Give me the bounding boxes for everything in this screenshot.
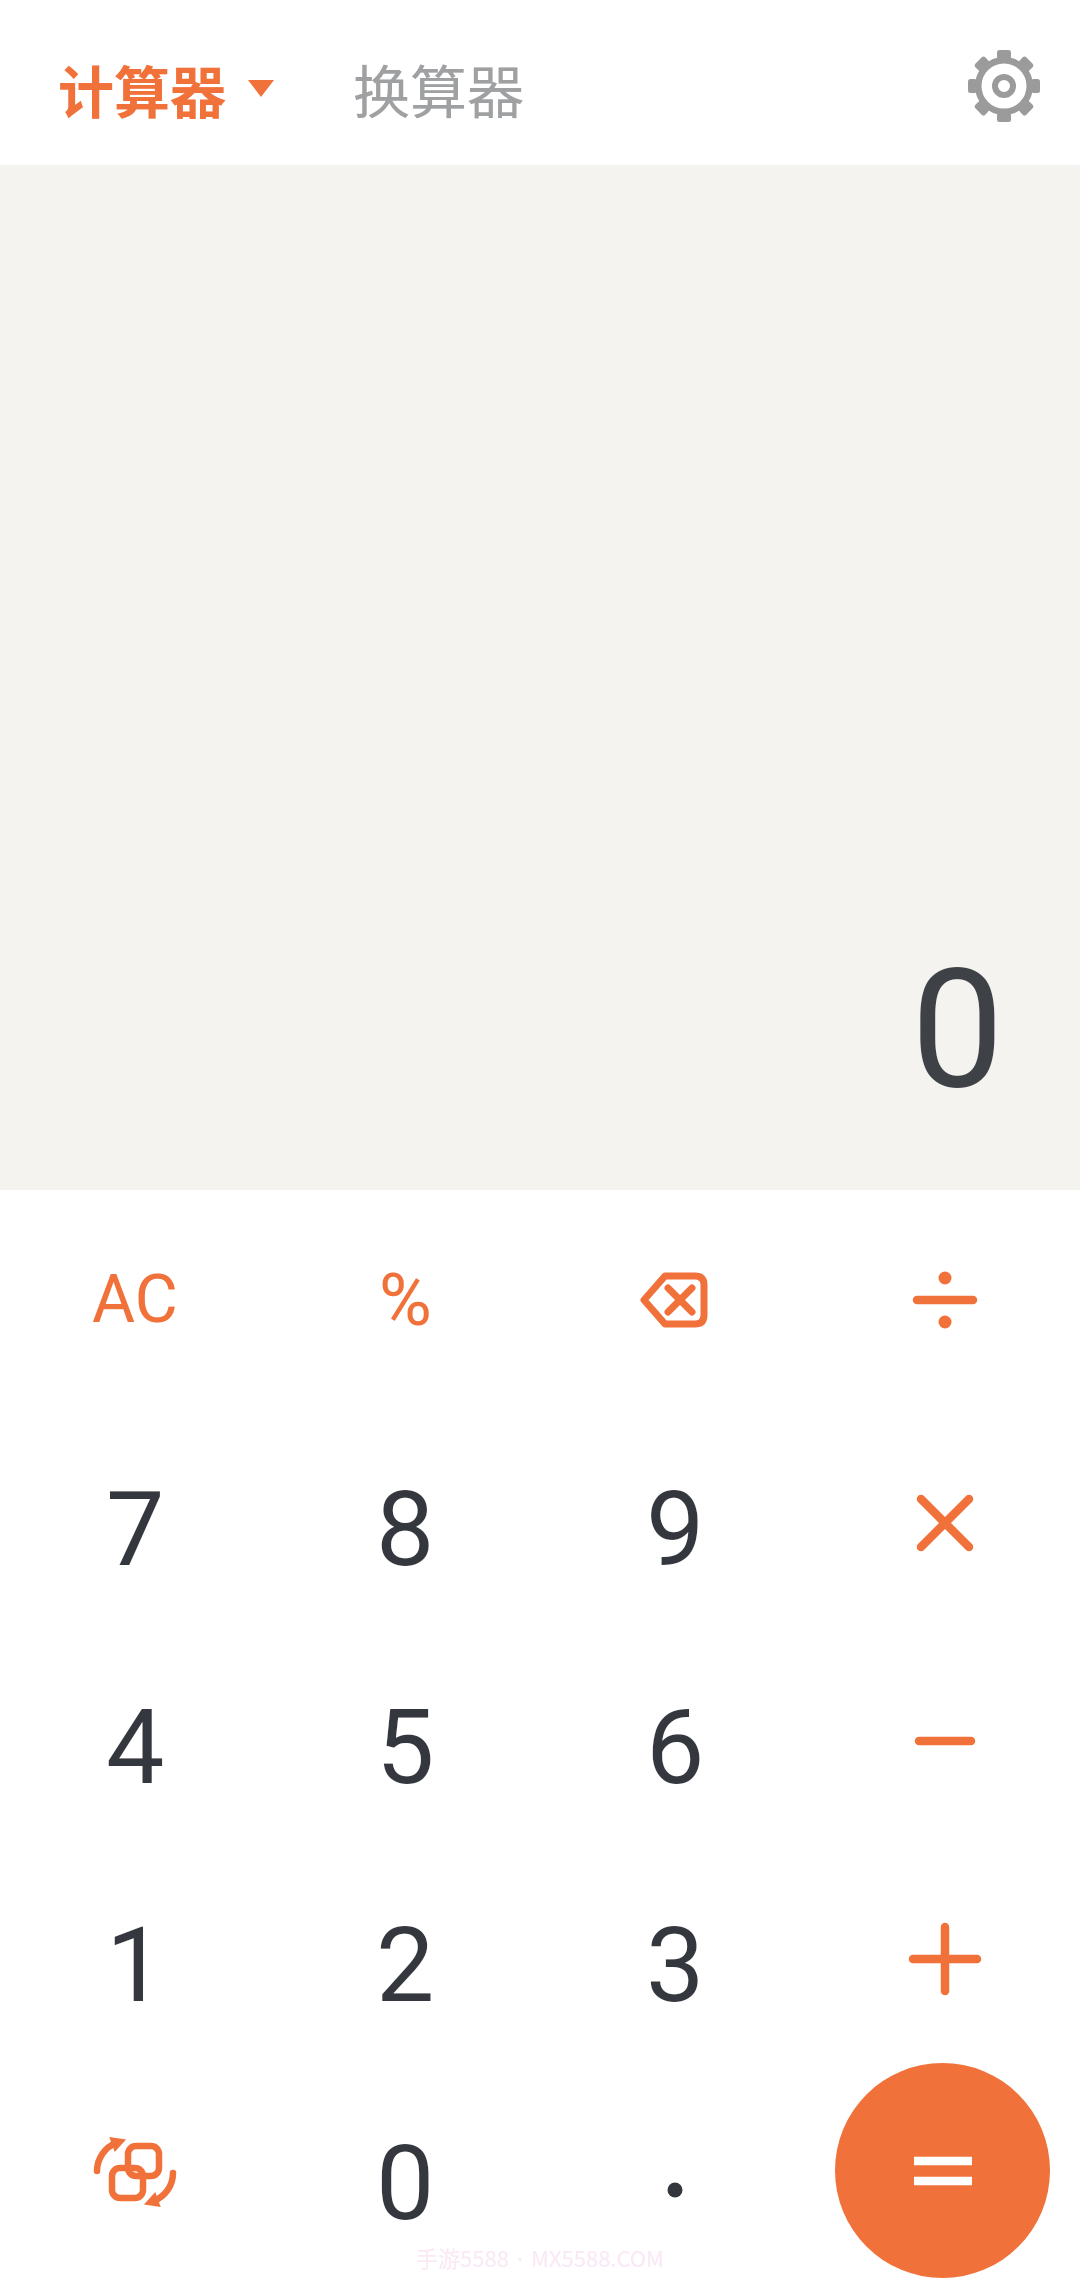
staticText: 7: [106, 1469, 165, 1591]
button[interactable]: 5: [270, 1627, 540, 1845]
button[interactable]: 7: [0, 1409, 270, 1627]
staticText: 8: [376, 1469, 435, 1591]
button[interactable]: [962, 44, 1046, 128]
staticText: 换算器: [353, 47, 524, 130]
staticText: %: [379, 1258, 432, 1342]
button[interactable]: 计算器: [58, 48, 274, 129]
button[interactable]: 4: [0, 1627, 270, 1845]
button[interactable]: [540, 2063, 810, 2281]
staticText: 6: [646, 1687, 705, 1809]
button[interactable]: [810, 1190, 1080, 1409]
staticText: 0: [376, 2123, 435, 2245]
staticText: 计算器: [58, 48, 226, 129]
button[interactable]: %: [270, 1190, 540, 1409]
staticText: AC: [92, 1261, 178, 1338]
button[interactable]: [810, 1627, 1080, 1845]
button[interactable]: 0: [270, 2063, 540, 2281]
button[interactable]: 换算器: [353, 47, 524, 130]
button[interactable]: [0, 2063, 270, 2281]
button[interactable]: [810, 1845, 1080, 2063]
button[interactable]: 2: [270, 1845, 540, 2063]
button[interactable]: [835, 2063, 1050, 2278]
button[interactable]: 3: [540, 1845, 810, 2063]
button[interactable]: [810, 1409, 1080, 1627]
button[interactable]: 9: [540, 1409, 810, 1627]
button[interactable]: 8: [270, 1409, 540, 1627]
button[interactable]: AC: [0, 1190, 270, 1409]
staticText: 1: [106, 1905, 165, 2027]
staticText: 2: [376, 1905, 435, 2027]
button[interactable]: 1: [0, 1845, 270, 2063]
button[interactable]: [540, 1190, 810, 1409]
staticText: 手游5588 · MX5588.COM: [416, 2241, 664, 2273]
staticText: 0: [911, 933, 1004, 1126]
staticText: 5: [376, 1687, 435, 1809]
staticText: 4: [106, 1687, 165, 1809]
button[interactable]: 6: [540, 1627, 810, 1845]
staticText: 3: [646, 1905, 705, 2027]
staticText: 9: [646, 1469, 705, 1591]
